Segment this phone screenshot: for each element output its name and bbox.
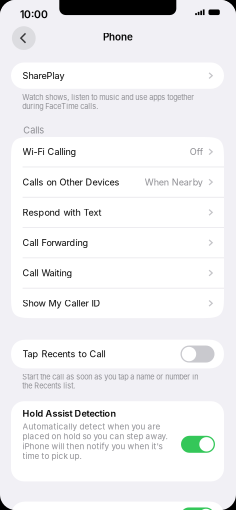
button[interactable]: Back	[12, 26, 36, 50]
button[interactable]: Show My Caller ID	[11, 288, 224, 318]
staticText: Calls	[23, 124, 44, 136]
staticText: Start the call as soon as you tap a name…	[22, 372, 198, 390]
staticText: SharePlay	[23, 70, 65, 81]
button[interactable]: Call Forwarding	[11, 228, 224, 257]
button[interactable]	[11, 502, 224, 510]
staticText: 10:00	[20, 8, 48, 21]
button[interactable]: Respond with Text	[11, 198, 224, 227]
staticText: Call Forwarding	[23, 237, 89, 248]
staticText: Respond with Text	[23, 207, 102, 218]
staticText: Wi-Fi Calling	[23, 146, 77, 157]
staticText: Show My Caller ID	[23, 298, 101, 309]
button[interactable]: Calls on Other Devices	[11, 167, 224, 197]
staticText: Phone	[103, 31, 133, 43]
staticText: Off	[190, 146, 203, 157]
button[interactable]: Wi-Fi Calling	[11, 137, 224, 167]
staticText: Calls on Other Devices	[23, 177, 120, 188]
staticText: Call Waiting	[23, 267, 73, 278]
button[interactable]: Hold Assist Detection	[11, 401, 224, 481]
button[interactable]: Call Waiting	[11, 258, 224, 288]
button[interactable]: SharePlay	[11, 62, 224, 89]
staticText: Tap Recents to Call	[23, 349, 106, 360]
staticText: Watch shows, listen to music and use app…	[22, 93, 194, 111]
staticText: Automatically detect when you are placed…	[23, 422, 168, 461]
staticText: Hold Assist Detection	[23, 408, 117, 419]
staticText: When Nearby	[145, 177, 203, 188]
button[interactable]: Tap Recents to Call	[11, 340, 224, 368]
